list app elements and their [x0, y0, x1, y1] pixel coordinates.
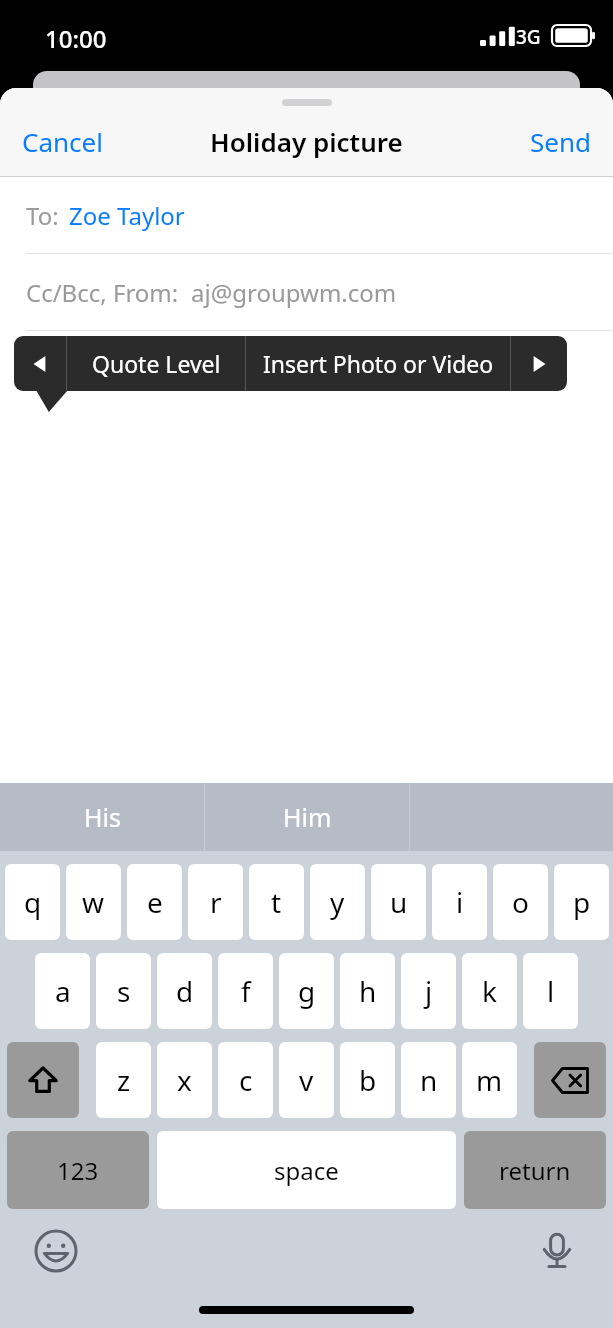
staticText: a: [55, 972, 71, 1010]
staticText: 3G: [516, 24, 541, 50]
staticText: return: [499, 1154, 571, 1187]
staticText: Insert Photo or Video: [263, 348, 494, 379]
button[interactable]: z: [96, 1042, 151, 1118]
staticText: h: [359, 972, 377, 1010]
button[interactable]: w: [66, 864, 121, 940]
staticText: k: [482, 972, 497, 1010]
button[interactable]: Send: [516, 116, 605, 167]
button[interactable]: x: [157, 1042, 212, 1118]
button[interactable]: Dictation: [529, 1223, 585, 1279]
staticText: n: [420, 1061, 438, 1099]
button[interactable]: l: [523, 953, 578, 1029]
staticText: u: [390, 883, 408, 921]
button[interactable]: Insert Photo or Video: [246, 336, 510, 391]
button[interactable]: c: [218, 1042, 273, 1118]
staticText: g: [298, 972, 316, 1010]
staticText: i: [456, 883, 464, 921]
staticText: space: [274, 1154, 339, 1187]
staticText: His: [84, 800, 121, 834]
button[interactable]: j: [401, 953, 456, 1029]
button[interactable]: t: [249, 864, 304, 940]
staticText: s: [117, 972, 131, 1010]
staticText: l: [547, 972, 555, 1010]
button[interactable]: k: [462, 953, 517, 1029]
staticText: y: [330, 883, 345, 921]
staticText: 123: [57, 1154, 99, 1187]
button[interactable]: e: [127, 864, 182, 940]
staticText: 10:00: [45, 22, 107, 55]
button[interactable]: b: [340, 1042, 395, 1118]
button[interactable]: a: [35, 953, 90, 1029]
button[interactable]: Previous: [14, 336, 66, 391]
staticText: o: [512, 883, 529, 921]
button[interactable]: Backspace: [534, 1042, 606, 1118]
staticText: q: [24, 883, 42, 921]
button[interactable]: h: [340, 953, 395, 1029]
staticText: j: [425, 972, 433, 1010]
button[interactable]: n: [401, 1042, 456, 1118]
staticText: Cancel: [22, 124, 103, 159]
button[interactable]: q: [5, 864, 60, 940]
staticText: z: [117, 1061, 131, 1099]
staticText: b: [359, 1061, 377, 1099]
staticText: aj@groupwm.com: [191, 276, 397, 309]
button[interactable]: Cancel: [8, 116, 117, 167]
staticText: Cc/Bcc, From:: [26, 276, 179, 309]
staticText: Zoe Taylor: [69, 199, 185, 232]
staticText: Quote Level: [92, 348, 221, 379]
staticText: e: [147, 883, 163, 921]
staticText: v: [299, 1061, 314, 1099]
staticText: c: [239, 1061, 253, 1099]
button[interactable]: To:: [0, 177, 613, 253]
button[interactable]: g: [279, 953, 334, 1029]
staticText: w: [82, 883, 105, 921]
staticText: x: [177, 1061, 192, 1099]
button[interactable]: f: [218, 953, 273, 1029]
staticText: t: [271, 883, 282, 921]
button[interactable]: v: [279, 1042, 334, 1118]
staticText: p: [573, 883, 591, 921]
staticText: To:: [26, 199, 59, 232]
staticText: Holiday picture: [210, 124, 403, 159]
button[interactable]: 123: [7, 1131, 149, 1209]
button[interactable]: o: [493, 864, 548, 940]
button[interactable]: i: [432, 864, 487, 940]
staticText: f: [241, 972, 251, 1010]
button[interactable]: Quote Level: [67, 336, 245, 391]
button[interactable]: d: [157, 953, 212, 1029]
button[interactable]: y: [310, 864, 365, 940]
staticText: Him: [283, 800, 332, 834]
button[interactable]: Shift: [7, 1042, 79, 1118]
button[interactable]: s: [96, 953, 151, 1029]
staticText: Hi: [27, 349, 51, 382]
button[interactable]: m: [462, 1042, 517, 1118]
button[interactable]: return: [464, 1131, 606, 1209]
button[interactable]: r: [188, 864, 243, 940]
staticText: m: [476, 1061, 503, 1099]
button[interactable]: space: [157, 1131, 456, 1209]
staticText: r: [210, 883, 222, 921]
button[interactable]: Emoji: [28, 1223, 84, 1279]
button[interactable]: His: [0, 783, 204, 851]
button[interactable]: Him: [205, 783, 409, 851]
button[interactable]: p: [554, 864, 609, 940]
staticText: d: [176, 972, 194, 1010]
button[interactable]: u: [371, 864, 426, 940]
button[interactable]: Cc/Bcc, From:: [0, 254, 613, 330]
staticText: Send: [530, 124, 591, 159]
button[interactable]: Next: [511, 336, 567, 391]
